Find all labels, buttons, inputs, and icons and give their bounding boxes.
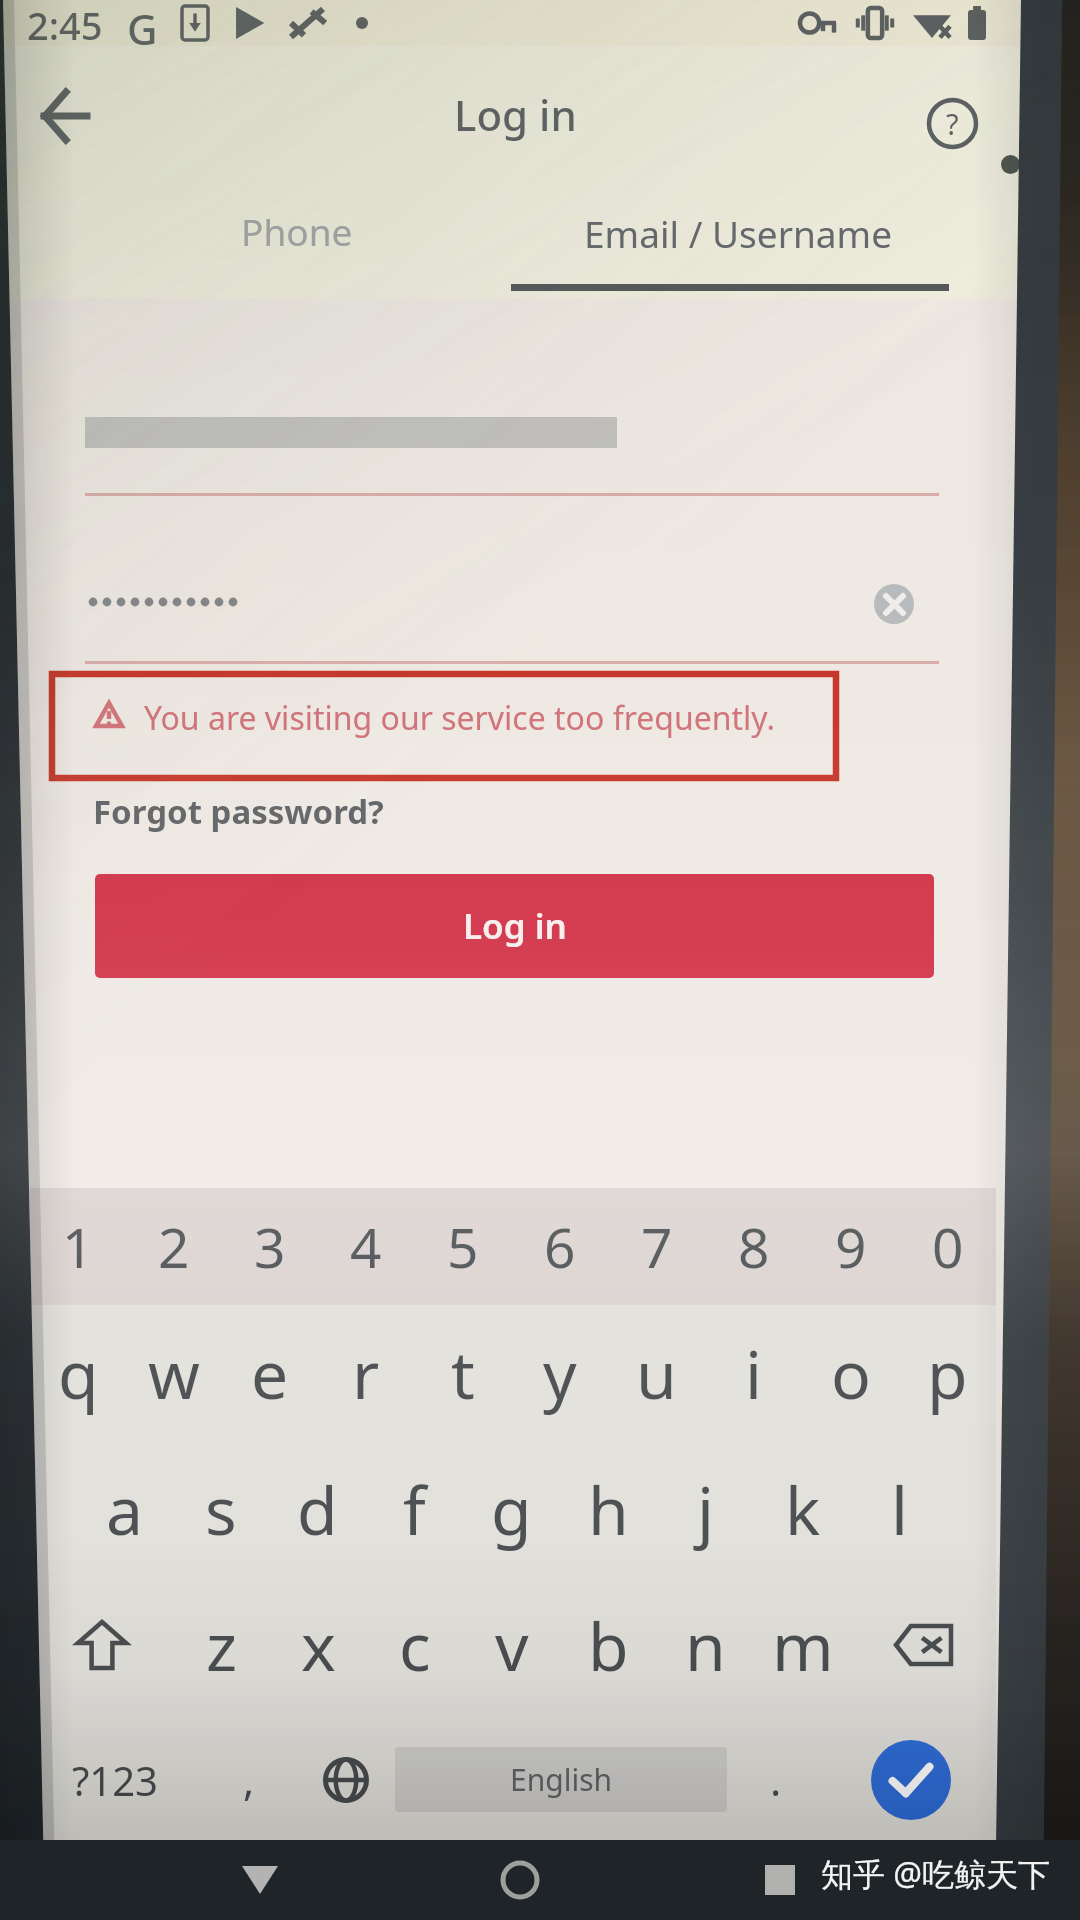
button[interactable]: 9 [802, 1188, 899, 1305]
staticText: You are visiting our service too frequen… [144, 696, 775, 740]
staticText: 2 [158, 1209, 190, 1284]
staticText: n [685, 1600, 726, 1690]
staticText: f [403, 1464, 426, 1554]
staticText: , [243, 1751, 255, 1808]
button[interactable]: w [126, 1305, 222, 1441]
staticText: u [636, 1328, 677, 1418]
button[interactable]: , [200, 1713, 297, 1846]
button[interactable]: x [270, 1577, 366, 1713]
staticText: 9 [835, 1209, 867, 1284]
button[interactable]: 6 [511, 1188, 608, 1305]
button[interactable]: v [463, 1577, 560, 1713]
staticText: Log in [463, 902, 567, 950]
staticText: . [770, 1751, 782, 1808]
button[interactable]: 4 [318, 1188, 414, 1305]
staticText: 7 [641, 1209, 673, 1284]
button[interactable]: Home [492, 1852, 548, 1908]
staticText: English [510, 1759, 613, 1800]
staticText: Log in [454, 86, 577, 143]
staticText: z [206, 1600, 238, 1690]
button[interactable]: k [754, 1441, 851, 1577]
button[interactable]: t [414, 1305, 511, 1441]
staticText: g [491, 1464, 532, 1554]
button[interactable]: n [657, 1577, 754, 1713]
button[interactable]: 2 [126, 1188, 222, 1305]
button[interactable]: g [463, 1441, 560, 1577]
staticText: 知乎 @吃鲸天下 [821, 1852, 1051, 1896]
button[interactable]: Forgot password? [93, 789, 384, 834]
button[interactable]: Switch language [297, 1713, 395, 1846]
staticText: l [891, 1464, 909, 1554]
staticText: Email / Username [584, 208, 893, 258]
button[interactable]: m [754, 1577, 851, 1713]
staticText: y [543, 1328, 577, 1418]
button[interactable]: 7 [608, 1188, 705, 1305]
staticText: 4 [350, 1209, 382, 1284]
button[interactable]: Back [232, 1852, 288, 1908]
staticText: 2:45 [27, 0, 103, 45]
staticText: 1 [62, 1209, 94, 1284]
button[interactable]: s [173, 1441, 269, 1577]
button[interactable]: 5 [414, 1188, 511, 1305]
staticText: o [831, 1328, 871, 1418]
staticText: 6 [544, 1209, 576, 1284]
button[interactable]: p [899, 1305, 996, 1441]
button[interactable]: i [705, 1305, 802, 1441]
button[interactable]: r [318, 1305, 414, 1441]
staticText: d [297, 1464, 338, 1554]
button[interactable]: y [511, 1305, 608, 1441]
button[interactable]: 3 [222, 1188, 318, 1305]
staticText: a [106, 1464, 144, 1554]
staticText: ? [946, 104, 959, 143]
button[interactable]: Clear password [874, 584, 914, 624]
button[interactable]: Phone [16, 178, 511, 300]
button[interactable]: Back [26, 77, 104, 155]
staticText: Phone [241, 206, 353, 256]
staticText: e [251, 1328, 289, 1418]
button[interactable]: o [802, 1305, 899, 1441]
staticText: ?123 [72, 1753, 158, 1807]
staticText: h [588, 1464, 629, 1554]
button[interactable]: l [851, 1441, 948, 1577]
staticText: v [495, 1600, 529, 1690]
button[interactable]: u [608, 1305, 705, 1441]
staticText: t [451, 1328, 475, 1418]
staticText: q [58, 1328, 99, 1418]
staticText: i [745, 1328, 763, 1418]
button[interactable]: Done [825, 1713, 996, 1846]
button[interactable]: . [727, 1713, 825, 1846]
staticText: j [697, 1464, 715, 1554]
staticText: 3 [254, 1209, 286, 1284]
staticText: b [588, 1600, 629, 1690]
button[interactable]: Help [916, 87, 988, 159]
staticText: r [352, 1328, 380, 1418]
staticText: c [399, 1600, 431, 1690]
button[interactable]: Recent apps [752, 1852, 808, 1908]
staticText: m [772, 1600, 834, 1690]
button[interactable]: h [560, 1441, 657, 1577]
button[interactable]: c [366, 1577, 463, 1713]
button[interactable]: q [30, 1305, 126, 1441]
staticText: G [127, 0, 158, 46]
staticText: 5 [447, 1209, 479, 1284]
staticText: w [148, 1328, 200, 1418]
button[interactable]: English [395, 1747, 727, 1812]
button[interactable]: f [366, 1441, 463, 1577]
button[interactable]: 1 [30, 1188, 126, 1305]
staticText: 8 [738, 1209, 770, 1284]
button[interactable]: b [560, 1577, 657, 1713]
button[interactable]: Log in [95, 874, 934, 978]
button[interactable]: z [174, 1577, 270, 1713]
button[interactable]: j [657, 1441, 754, 1577]
button[interactable]: ?123 [30, 1713, 200, 1846]
button[interactable]: Email / Username [511, 178, 1012, 300]
button[interactable]: e [222, 1305, 318, 1441]
button[interactable]: 8 [705, 1188, 802, 1305]
staticText: x [301, 1600, 336, 1690]
button[interactable]: a [77, 1441, 173, 1577]
button[interactable]: d [269, 1441, 366, 1577]
button[interactable]: 0 [899, 1188, 996, 1305]
button[interactable]: Shift [30, 1577, 174, 1713]
button[interactable]: Backspace [851, 1577, 996, 1713]
staticText: s [205, 1464, 237, 1554]
